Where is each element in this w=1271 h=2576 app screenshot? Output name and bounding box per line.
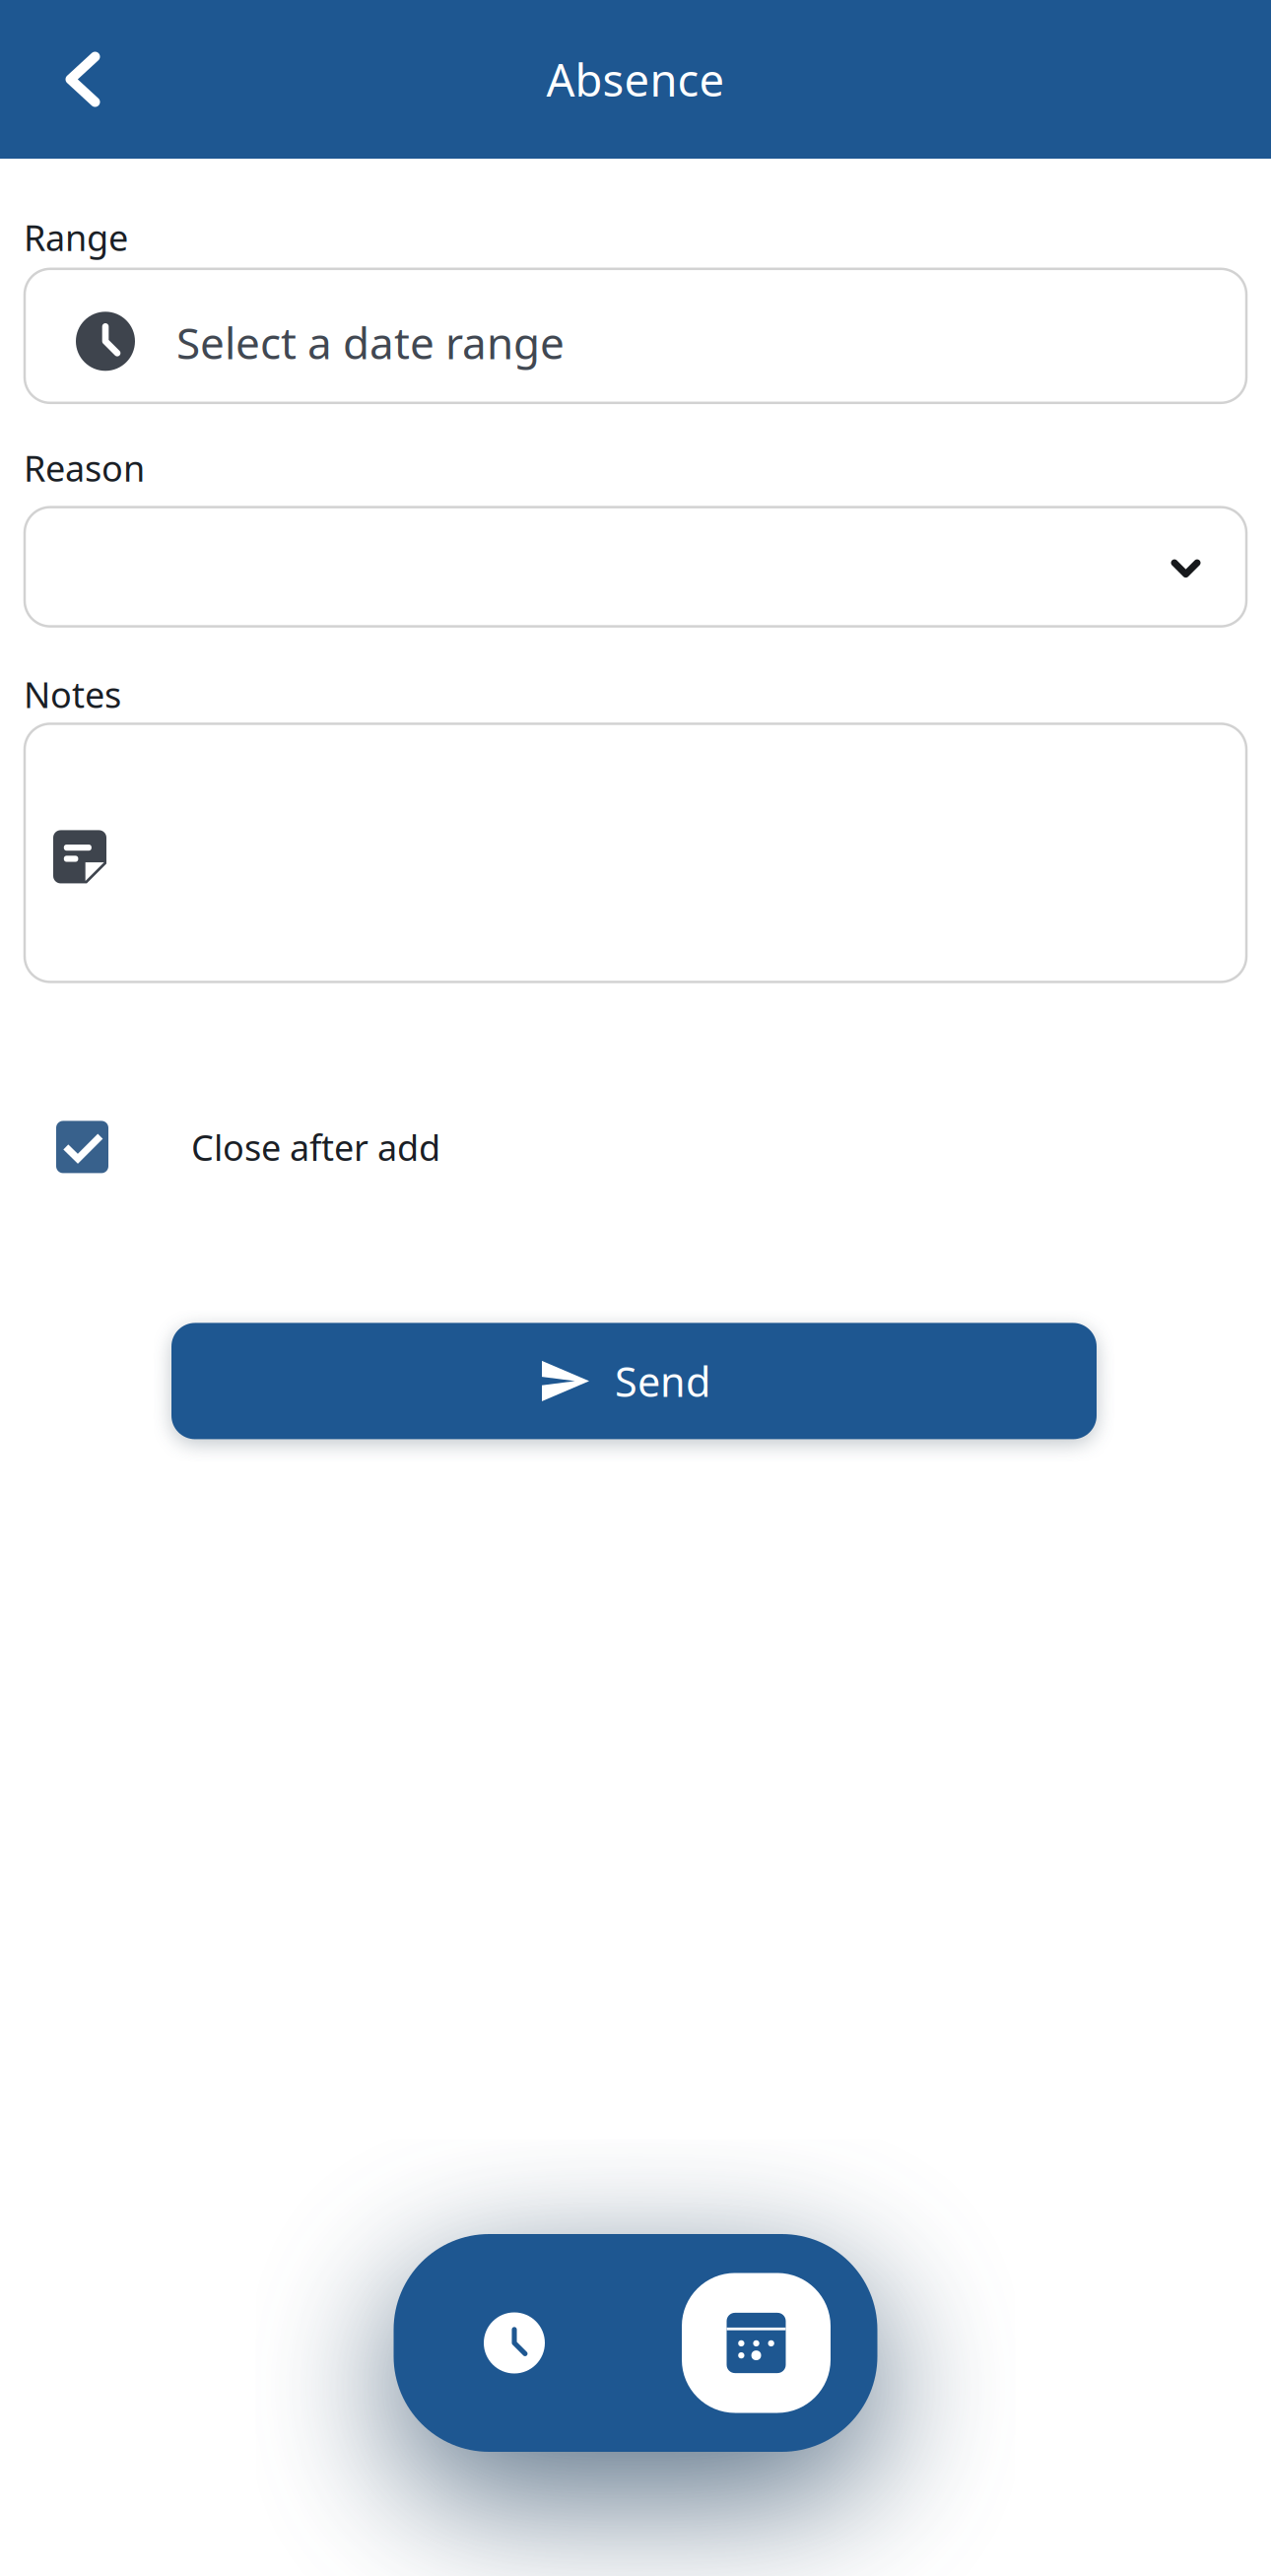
- button[interactable]: Back: [0, 0, 166, 159]
- staticText: Absence: [546, 50, 725, 109]
- button[interactable]: Time: [394, 2234, 635, 2452]
- button[interactable]: Select a date range: [25, 269, 1246, 403]
- staticText: Send: [615, 1354, 710, 1408]
- button[interactable]: Calendar: [635, 2234, 877, 2452]
- button[interactable]: Send: [171, 1323, 1097, 1439]
- button[interactable]: [25, 507, 1246, 626]
- staticText: Reason: [24, 444, 145, 491]
- staticText: Select a date range: [176, 313, 565, 371]
- staticText: Range: [24, 214, 128, 261]
- button[interactable]: Close after add: [0, 1121, 1271, 1173]
- button[interactable]: [25, 724, 1246, 982]
- staticText: Notes: [24, 671, 121, 718]
- staticText: Close after add: [191, 1123, 440, 1171]
